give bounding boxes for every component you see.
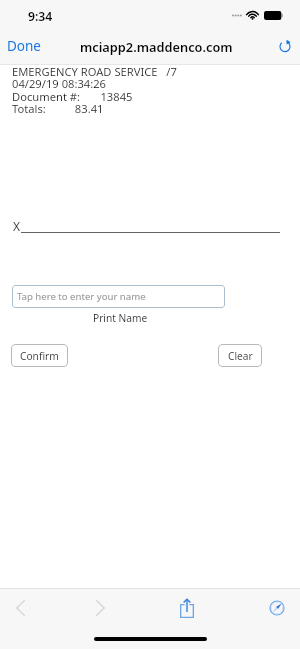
staticText: Confirm <box>20 349 59 363</box>
button[interactable]: Share <box>170 591 204 625</box>
staticText: Document #: 13845 <box>12 89 133 104</box>
staticText: EMERGENCY ROAD SERVICE /7 <box>12 64 177 79</box>
button[interactable]: Confirm <box>11 344 68 367</box>
button[interactable]: Clear <box>218 344 262 367</box>
button[interactable]: Forward <box>83 591 117 625</box>
staticText: mciapp2.maddenco.com <box>80 38 233 55</box>
button[interactable]: Tap here to enter your name <box>12 285 225 308</box>
staticText: Done <box>7 37 41 55</box>
button[interactable]: Back <box>3 591 37 625</box>
button[interactable]: Reload <box>277 38 293 54</box>
staticText: Totals: 83.41 <box>12 101 104 116</box>
staticText: X <box>13 218 21 234</box>
staticText: Clear <box>228 349 253 363</box>
staticText: 04/29/19 08:34:26 <box>12 76 107 91</box>
button[interactable]: Done <box>0 33 51 59</box>
button[interactable]: Safari <box>260 591 294 625</box>
staticText: 9:34 <box>28 8 53 25</box>
staticText: Tap here to enter your name <box>17 290 146 303</box>
staticText: Print Name <box>93 311 148 325</box>
